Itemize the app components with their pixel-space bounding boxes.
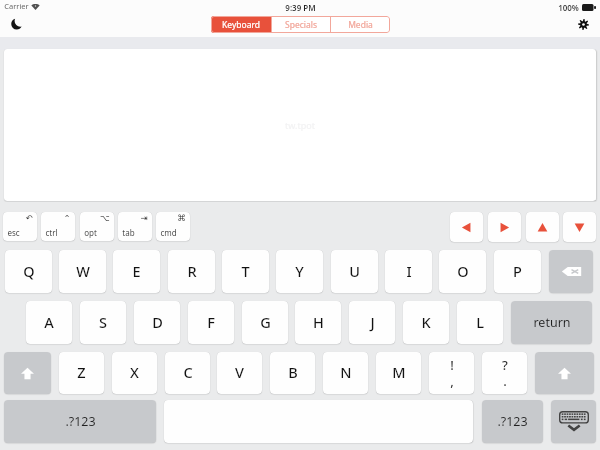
button[interactable]: return bbox=[511, 301, 592, 344]
button[interactable]: ! bbox=[429, 352, 474, 394]
staticText: I bbox=[406, 261, 412, 281]
button[interactable]: P bbox=[494, 250, 541, 293]
button[interactable]: ? bbox=[482, 352, 527, 394]
button[interactable]: ↶ bbox=[3, 212, 37, 241]
button[interactable]: R bbox=[168, 250, 215, 293]
button[interactable]: B bbox=[270, 352, 315, 394]
button[interactable]: X bbox=[112, 352, 157, 394]
button[interactable]: ⌃ bbox=[41, 212, 75, 241]
staticText: V bbox=[235, 362, 244, 382]
staticText: ? bbox=[502, 356, 508, 374]
staticText: Z bbox=[77, 362, 86, 382]
button[interactable]: Shift bbox=[4, 352, 51, 394]
staticText: tw.tpot bbox=[285, 119, 315, 131]
button[interactable]: V bbox=[217, 352, 262, 394]
button[interactable]: N bbox=[323, 352, 368, 394]
button[interactable]: Z bbox=[59, 352, 104, 394]
button[interactable]: L bbox=[457, 301, 503, 344]
button[interactable]: Media bbox=[331, 16, 390, 33]
button[interactable]: Night mode bbox=[7, 14, 27, 34]
button[interactable]: A bbox=[26, 301, 72, 344]
staticText: B bbox=[288, 362, 298, 382]
button[interactable]: .?123 bbox=[482, 400, 543, 443]
staticText: ctrl bbox=[45, 227, 58, 238]
staticText: K bbox=[421, 312, 431, 332]
button[interactable]: D bbox=[134, 301, 180, 344]
button[interactable]: Q bbox=[5, 250, 52, 293]
button[interactable]: F bbox=[188, 301, 234, 344]
button[interactable]: M bbox=[376, 352, 421, 394]
button[interactable]: Specials bbox=[272, 16, 330, 33]
staticText: Keyboard bbox=[222, 19, 260, 31]
staticText: N bbox=[340, 362, 352, 382]
button[interactable]: G bbox=[242, 301, 288, 344]
staticText: R bbox=[187, 261, 197, 281]
button[interactable]: Settings bbox=[573, 14, 593, 34]
button[interactable]: W bbox=[59, 250, 106, 293]
button[interactable]: Right bbox=[488, 212, 521, 242]
staticText: ⌃ bbox=[63, 213, 71, 223]
button[interactable]: ⌥ bbox=[80, 212, 114, 241]
staticText: G bbox=[260, 312, 271, 332]
staticText: W bbox=[76, 261, 90, 281]
button[interactable]: Y bbox=[276, 250, 323, 293]
staticText: cmd bbox=[160, 227, 177, 238]
staticText: D bbox=[152, 312, 163, 332]
staticText: ⇥ bbox=[140, 213, 148, 223]
button[interactable]: U bbox=[331, 250, 378, 293]
button[interactable]: .?123 bbox=[4, 400, 156, 443]
button[interactable]: T bbox=[222, 250, 269, 293]
staticText: ↶ bbox=[25, 213, 33, 223]
staticText: Q bbox=[23, 261, 35, 281]
staticText: U bbox=[349, 261, 360, 281]
staticText: Y bbox=[295, 261, 304, 281]
button[interactable]: Keyboard bbox=[211, 16, 271, 33]
button[interactable]: K bbox=[403, 301, 449, 344]
button[interactable]: I bbox=[385, 250, 432, 293]
button[interactable]: H bbox=[295, 301, 341, 344]
button[interactable]: ⌘ bbox=[156, 212, 190, 241]
button[interactable]: O bbox=[439, 250, 486, 293]
staticText: ! bbox=[450, 356, 454, 374]
button[interactable]: J bbox=[349, 301, 395, 344]
staticText: M bbox=[392, 362, 406, 382]
staticText: ⌘ bbox=[177, 213, 186, 223]
staticText: F bbox=[207, 312, 215, 332]
staticText: X bbox=[130, 362, 139, 382]
staticText: , bbox=[450, 372, 454, 390]
button[interactable]: Down bbox=[563, 212, 596, 242]
staticText: 100% bbox=[558, 2, 579, 13]
staticText: E bbox=[132, 261, 141, 281]
button[interactable]: Shift bbox=[535, 352, 594, 394]
button[interactable]: C bbox=[165, 352, 210, 394]
button[interactable]: Left bbox=[450, 212, 483, 242]
staticText: T bbox=[241, 261, 250, 281]
staticText: Media bbox=[348, 19, 373, 31]
staticText: L bbox=[476, 312, 484, 332]
button[interactable]: Up bbox=[526, 212, 559, 242]
button[interactable]: Hide keyboard bbox=[551, 400, 596, 443]
staticText: ⌥ bbox=[100, 213, 110, 223]
staticText: return bbox=[533, 314, 571, 331]
staticText: A bbox=[44, 312, 54, 332]
staticText: tab bbox=[122, 227, 135, 238]
button[interactable]: E bbox=[113, 250, 160, 293]
staticText: Carrier bbox=[4, 1, 29, 11]
staticText: J bbox=[370, 312, 375, 332]
staticText: H bbox=[313, 312, 324, 332]
staticText: P bbox=[513, 261, 522, 281]
staticText: Specials bbox=[285, 19, 317, 31]
button[interactable]: Backspace bbox=[549, 250, 593, 293]
staticText: C bbox=[183, 362, 193, 382]
button[interactable]: ⇥ bbox=[118, 212, 152, 241]
staticText: .?123 bbox=[497, 413, 528, 430]
staticText: opt bbox=[84, 227, 97, 238]
button[interactable]: S bbox=[80, 301, 126, 344]
staticText: .?123 bbox=[65, 413, 96, 430]
staticText: esc bbox=[7, 227, 20, 238]
staticText: S bbox=[99, 312, 107, 332]
staticText: . bbox=[503, 372, 507, 390]
staticText: 9:39 PM bbox=[285, 2, 316, 13]
staticText: O bbox=[457, 261, 469, 281]
